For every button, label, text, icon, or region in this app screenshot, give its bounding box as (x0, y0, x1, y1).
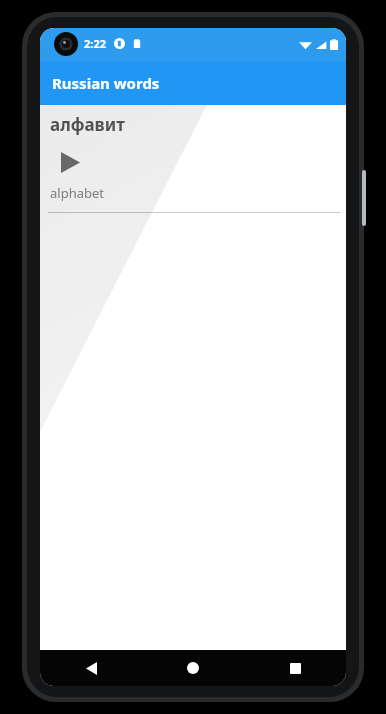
staticText: Russian words (52, 73, 160, 93)
staticText: алфавит (50, 113, 125, 136)
button[interactable]: Back (40, 650, 142, 686)
button[interactable]: Recent apps (244, 650, 346, 686)
staticText: 2:22 (84, 36, 106, 51)
staticText: alphabet (50, 184, 104, 202)
button[interactable]: Play pronunciation (54, 146, 86, 178)
button[interactable]: Home (142, 650, 244, 686)
